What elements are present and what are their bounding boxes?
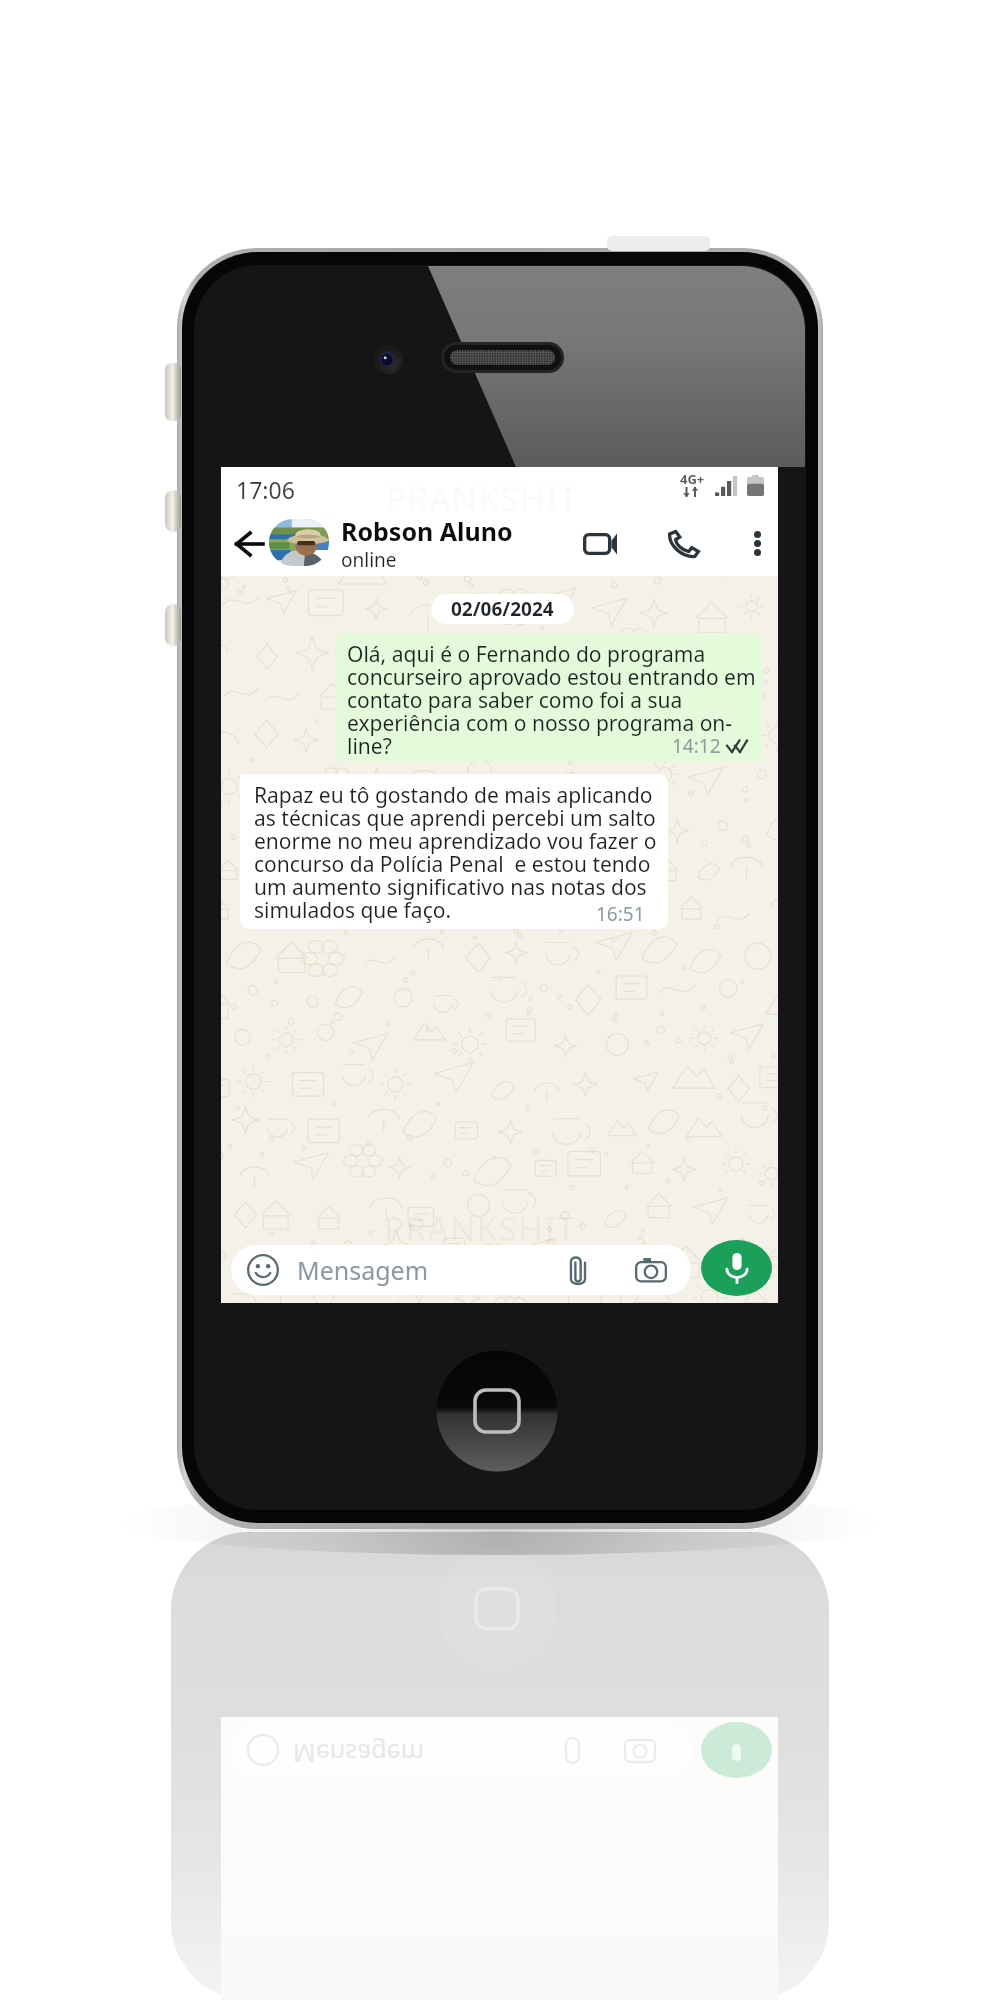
staticText: Rapaz eu tô gostando de mais aplicando a…: [254, 781, 659, 924]
staticText: Mensagem: [293, 1737, 425, 1771]
staticText: PRANKSHIT: [384, 1206, 577, 1251]
staticText: 02/06/2024: [451, 596, 554, 622]
button[interactable]: Emoji: [241, 1245, 285, 1295]
staticText: Robson Aluno: [341, 514, 513, 548]
staticText: 16:51: [596, 901, 645, 927]
staticText: 14:12: [672, 733, 721, 759]
staticText: 17:06: [236, 474, 295, 505]
button[interactable]: Attach: [558, 1245, 598, 1295]
staticText: 4G+: [680, 470, 705, 488]
staticText: Olá, aqui é o Fernando do programa concu…: [347, 640, 762, 760]
button[interactable]: Profile photo: [269, 519, 329, 566]
staticText: online: [341, 547, 397, 573]
button[interactable]: Call: [661, 511, 707, 576]
button[interactable]: Olá, aqui é o Fernando do programa concu…: [335, 633, 762, 761]
button[interactable]: Video call: [577, 511, 623, 576]
button[interactable]: 02/06/2024: [431, 594, 574, 624]
staticText: Mensagem: [297, 1253, 429, 1287]
button[interactable]: Camera: [629, 1245, 673, 1295]
button[interactable]: Rapaz eu tô gostando de mais aplicando a…: [240, 774, 668, 929]
button[interactable]: Back: [229, 511, 269, 576]
button[interactable]: More options: [737, 511, 777, 576]
button[interactable]: Emoji: [231, 1245, 691, 1295]
button[interactable]: Voice message: [701, 1240, 772, 1296]
